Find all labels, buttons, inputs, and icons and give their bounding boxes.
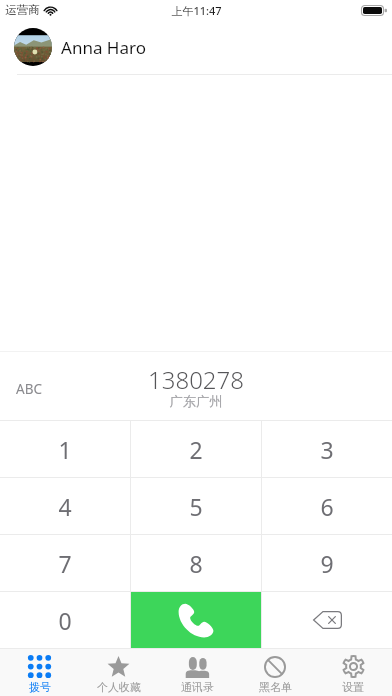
staticText: 广东广州 [169,393,223,410]
staticText: Anna Haro [61,36,146,59]
button[interactable]: 2 [131,421,261,477]
button[interactable]: 0 [0,592,130,648]
staticText: 6 [320,491,334,522]
staticText: 运营商 [5,3,40,17]
staticText: 8 [189,548,203,579]
button[interactable]: 7 [0,535,130,591]
staticText: 设置 [342,680,364,694]
button[interactable]: 个人收藏 [79,649,158,696]
staticText: 2 [189,434,203,465]
staticText: 个人收藏 [97,680,141,694]
button[interactable]: 拨号 [0,649,79,696]
button[interactable]: 5 [131,478,261,534]
button[interactable]: 6 [262,478,392,534]
staticText: 0 [58,605,72,636]
button[interactable]: 4 [0,478,130,534]
staticText: ABC [16,380,42,398]
staticText: 9 [320,548,334,579]
button[interactable]: 9 [262,535,392,591]
button[interactable]: 通讯录 [158,649,236,696]
button[interactable]: 黑名单 [236,649,314,696]
staticText: 拨号 [29,680,51,694]
button[interactable]: 设置 [314,649,392,696]
staticText: 7 [58,548,72,579]
staticText: 上午11:47 [171,3,222,18]
button[interactable]: 1 [0,421,130,477]
staticText: 1 [58,434,72,465]
button[interactable]: Call [131,592,261,648]
staticText: 4 [58,491,72,522]
button[interactable]: Delete [262,592,392,648]
staticText: 3 [320,434,334,465]
staticText: 通讯录 [181,680,214,694]
staticText: 黑名单 [259,680,292,694]
staticText: 5 [189,491,203,522]
staticText: 1380278 [148,363,244,396]
button[interactable]: 3 [262,421,392,477]
button[interactable]: Anna Haro [0,20,392,74]
button[interactable]: 8 [131,535,261,591]
